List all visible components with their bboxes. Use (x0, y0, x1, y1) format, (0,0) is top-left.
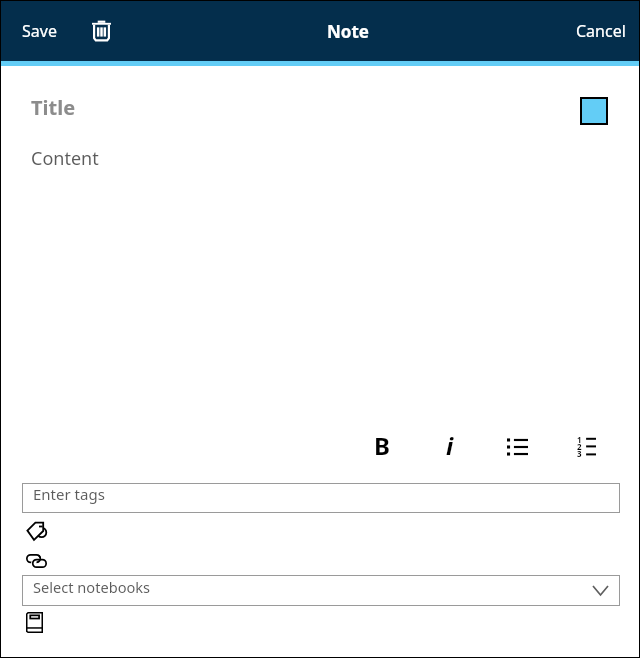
button[interactable]: Tags (27, 522, 47, 540)
button[interactable]: Italic (430, 428, 470, 462)
staticText: Title (31, 94, 76, 121)
staticText: Save (22, 20, 57, 42)
staticText: Select notebooks (33, 577, 151, 597)
staticText: Enter tags (33, 484, 105, 504)
button[interactable]: Title (22, 83, 572, 123)
button[interactable]: Enter tags (22, 483, 620, 513)
button[interactable]: Content (22, 139, 619, 419)
staticText: Note (327, 20, 369, 43)
button[interactable]: Notebook (26, 612, 43, 633)
button[interactable]: Link (26, 554, 47, 568)
button[interactable]: Select notebooks (22, 575, 620, 606)
staticText: i (446, 429, 454, 462)
button[interactable]: Bold (362, 428, 402, 462)
staticText: 2 (577, 441, 582, 452)
staticText: B (374, 429, 390, 462)
button[interactable]: Numbered list (566, 430, 606, 464)
button[interactable]: Bullet list (497, 430, 537, 464)
staticText: 1 (577, 434, 582, 445)
button[interactable]: Save (11, 1, 68, 61)
button[interactable]: Delete (83, 1, 119, 59)
staticText: Cancel (576, 20, 626, 42)
staticText: Content (31, 146, 99, 171)
staticText: 3 (577, 448, 582, 459)
button[interactable]: Cancel (569, 1, 633, 61)
